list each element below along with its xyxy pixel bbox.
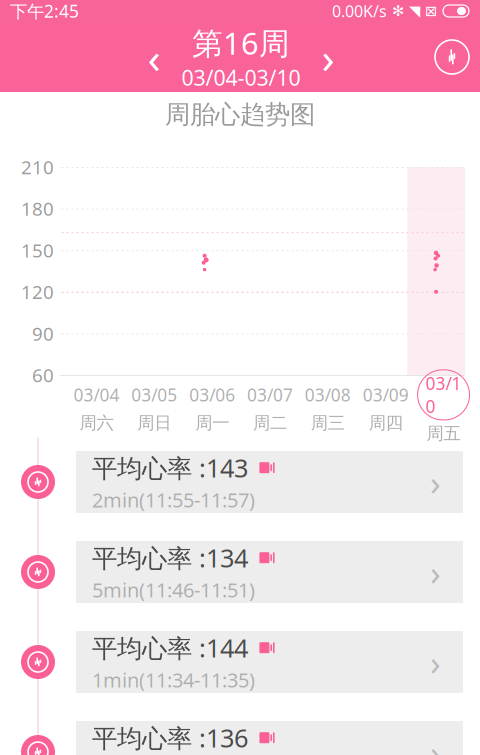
- staticText: 周四: [369, 412, 403, 434]
- staticText: ›: [321, 29, 334, 85]
- staticText: ✻: [387, 3, 409, 19]
- staticText: ›: [430, 639, 441, 685]
- staticText: 平均心率 :144: [92, 631, 248, 664]
- staticText: ◥: [409, 3, 420, 19]
- button[interactable]: 上一周: [132, 26, 176, 88]
- staticText: 03/09: [363, 383, 409, 406]
- staticText: 2min(11:55-11:57): [92, 486, 255, 513]
- staticText: ‹: [147, 29, 160, 85]
- staticText: 150: [21, 238, 54, 263]
- staticText: 03/04-03/10: [181, 63, 300, 91]
- staticText: 周三: [311, 412, 345, 434]
- staticText: 周日: [137, 412, 171, 434]
- staticText: 03/06: [189, 383, 235, 406]
- staticText: 03/08: [305, 383, 351, 406]
- staticText: 1min(11:34-11:35): [92, 666, 255, 693]
- button[interactable]: 平均心率 :134: [76, 541, 463, 603]
- staticText: 5min(11:46-11:51): [92, 576, 255, 603]
- staticText: 第16周: [192, 22, 290, 63]
- button[interactable]: 平均心率 :136: [76, 721, 463, 755]
- staticText: 周一: [195, 412, 229, 434]
- staticText: 下午2:45: [10, 0, 79, 22]
- button[interactable]: 胎心监测: [424, 26, 480, 88]
- staticText: 03/04: [73, 383, 119, 406]
- staticText: 60: [32, 363, 54, 387]
- staticText: 03/05: [131, 383, 177, 406]
- staticText: 90: [32, 321, 54, 346]
- staticText: 0.00K/s: [332, 0, 387, 22]
- staticText: 120: [21, 279, 54, 304]
- staticText: ⊠: [420, 3, 442, 19]
- button[interactable]: 平均心率 :143: [76, 451, 463, 513]
- staticText: 平均心率 :136: [92, 721, 248, 754]
- button[interactable]: 平均心率 :144: [76, 631, 463, 693]
- staticText: 周胎心趋势图: [165, 99, 315, 130]
- staticText: 平均心率 :143: [92, 451, 248, 484]
- staticText: 周五: [427, 423, 461, 444]
- staticText: ›: [430, 729, 441, 755]
- staticText: 180: [21, 196, 54, 221]
- staticText: ›: [430, 549, 441, 595]
- staticText: 周二: [253, 412, 287, 434]
- staticText: 03/07: [247, 383, 293, 406]
- staticText: 210: [21, 155, 54, 179]
- staticText: 03/10: [426, 372, 462, 418]
- button[interactable]: 下一周: [306, 26, 350, 88]
- staticText: ›: [430, 459, 441, 505]
- staticText: 周六: [79, 412, 113, 434]
- staticText: 平均心率 :134: [92, 541, 248, 574]
